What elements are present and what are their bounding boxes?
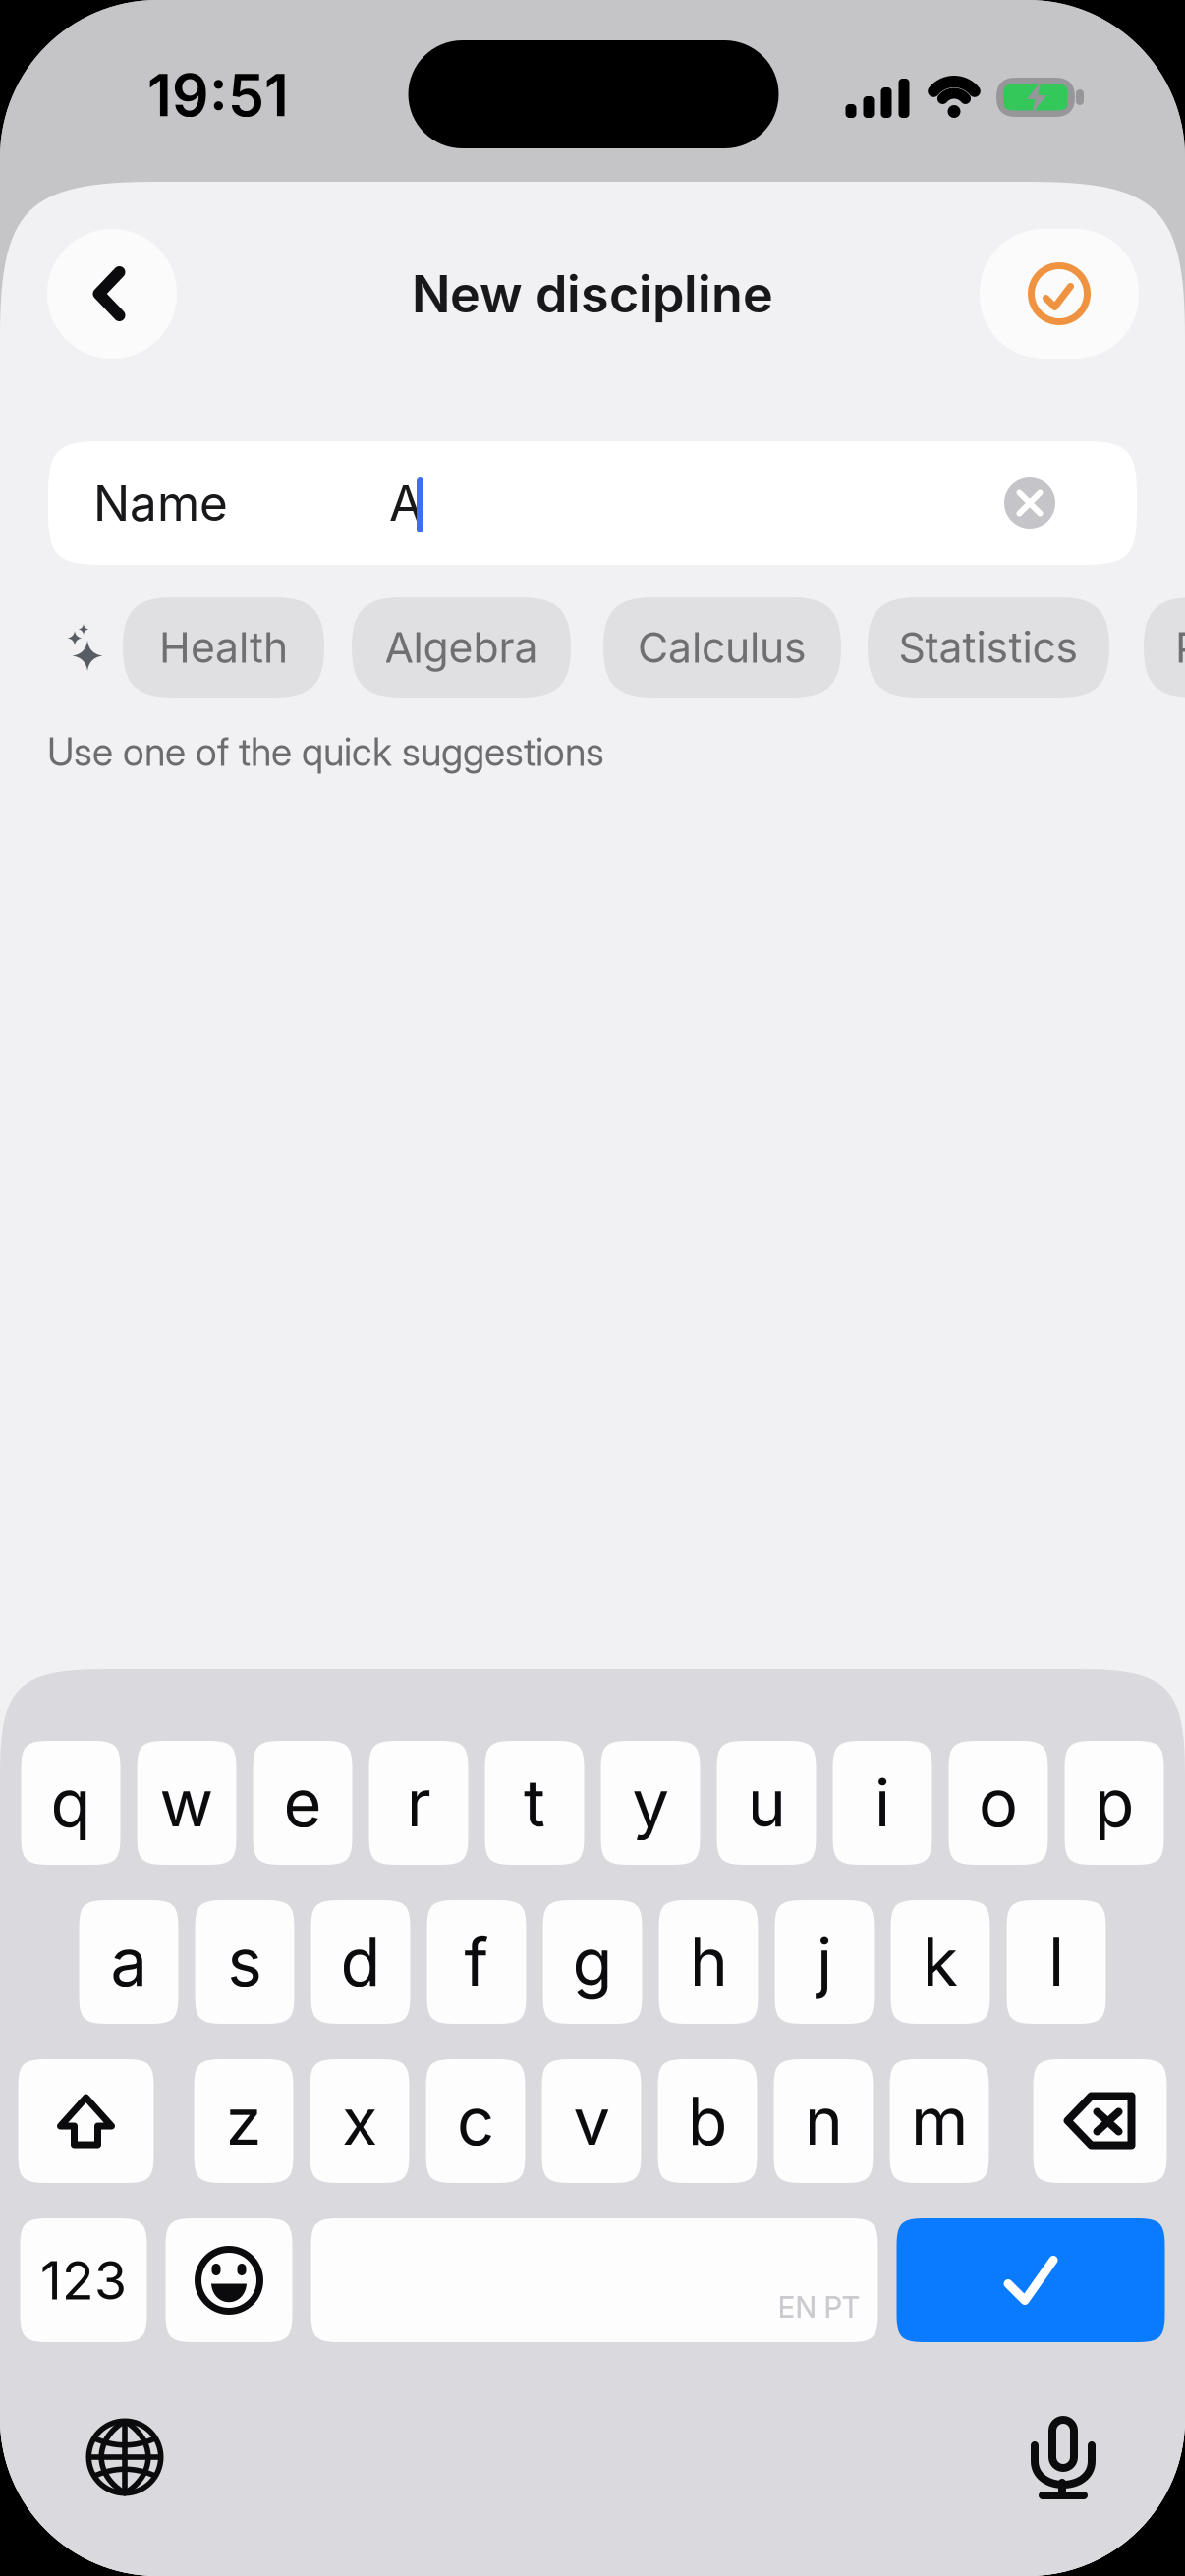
button[interactable]: a	[79, 1900, 178, 2024]
button[interactable]: w	[137, 1741, 236, 1865]
button[interactable]: n	[774, 2059, 873, 2183]
staticText: p	[1094, 1763, 1134, 1842]
staticText: g	[572, 1922, 613, 2002]
staticText: w	[160, 1763, 214, 1842]
staticText: s	[227, 1922, 262, 2002]
staticText: Name	[93, 474, 228, 532]
staticText: 19:51	[147, 60, 289, 130]
button[interactable]: c	[426, 2059, 525, 2183]
button[interactable]: l	[1007, 1900, 1106, 2024]
staticText: Health	[159, 622, 288, 673]
staticText: t	[524, 1763, 545, 1842]
staticText: o	[979, 1763, 1018, 1842]
button[interactable]: o	[949, 1741, 1048, 1865]
button[interactable]: p	[1065, 1741, 1164, 1865]
staticText: A	[389, 474, 423, 532]
staticText: Statistics	[899, 622, 1078, 673]
staticText: z	[226, 2082, 262, 2161]
button[interactable]: Switch keyboard	[76, 2408, 174, 2506]
button[interactable]: Delete	[1033, 2059, 1167, 2183]
button[interactable]: Back	[47, 229, 177, 359]
staticText: d	[340, 1922, 381, 2002]
button[interactable]: z	[194, 2059, 293, 2183]
button[interactable]: m	[890, 2059, 989, 2183]
staticText: k	[922, 1922, 959, 2002]
staticText: m	[911, 2082, 968, 2161]
staticText: n	[804, 2082, 843, 2161]
staticText: Calculus	[638, 622, 807, 673]
staticText: a	[111, 1922, 147, 2002]
staticText: New discipline	[412, 263, 773, 325]
staticText: Physics	[1175, 622, 1185, 673]
button[interactable]: u	[717, 1741, 816, 1865]
button[interactable]: x	[310, 2059, 409, 2183]
staticText: f	[464, 1922, 489, 2002]
staticText: y	[632, 1763, 669, 1842]
button[interactable]: Save	[980, 229, 1139, 359]
button[interactable]: Algebra	[352, 597, 571, 698]
button[interactable]: Clear text	[1004, 477, 1055, 529]
button[interactable]: Statistics	[868, 597, 1109, 698]
button[interactable]: s	[195, 1900, 294, 2024]
button[interactable]: y	[601, 1741, 700, 1865]
staticText: Use one of the quick suggestions	[47, 729, 604, 775]
button[interactable]: Health	[123, 597, 324, 698]
button[interactable]: b	[658, 2059, 757, 2183]
staticText: e	[283, 1763, 322, 1842]
staticText: Algebra	[385, 622, 538, 673]
staticText: l	[1048, 1922, 1064, 2002]
button[interactable]: Dictate	[1014, 2403, 1112, 2511]
staticText: b	[687, 2082, 728, 2161]
staticText: u	[747, 1763, 786, 1842]
button[interactable]: k	[891, 1900, 990, 2024]
button[interactable]: Emoji	[166, 2218, 292, 2342]
button[interactable]: d	[311, 1900, 410, 2024]
button[interactable]: e	[253, 1741, 352, 1865]
staticText: x	[342, 2082, 377, 2161]
staticText: i	[875, 1763, 890, 1842]
button[interactable]: h	[659, 1900, 758, 2024]
button[interactable]: Calculus	[603, 597, 841, 698]
button[interactable]: Space	[311, 2218, 878, 2342]
button[interactable]: r	[369, 1741, 468, 1865]
button[interactable]: Return	[897, 2218, 1165, 2342]
button[interactable]: i	[833, 1741, 932, 1865]
staticText: q	[51, 1763, 91, 1842]
staticText: v	[573, 2082, 610, 2161]
staticText: r	[406, 1763, 431, 1842]
button[interactable]: t	[485, 1741, 584, 1865]
staticText: c	[457, 2082, 494, 2161]
button[interactable]: Physics	[1144, 597, 1185, 698]
staticText: h	[689, 1922, 728, 2002]
staticText: 123	[40, 2249, 127, 2312]
staticText: j	[817, 1922, 832, 2002]
staticText: EN PT	[778, 2290, 860, 2324]
button[interactable]: 123	[20, 2218, 147, 2342]
button[interactable]: Shift	[18, 2059, 154, 2183]
button[interactable]: j	[775, 1900, 874, 2024]
button[interactable]: q	[21, 1741, 120, 1865]
button[interactable]: f	[427, 1900, 526, 2024]
button[interactable]: v	[542, 2059, 641, 2183]
button[interactable]: g	[543, 1900, 642, 2024]
